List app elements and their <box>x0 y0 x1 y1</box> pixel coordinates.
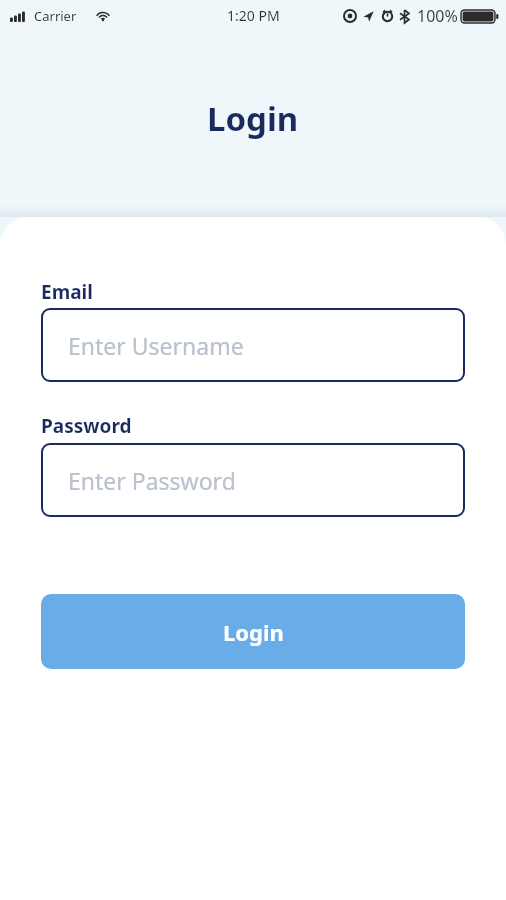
staticText: Enter Username <box>68 330 244 361</box>
staticText: Login <box>207 96 299 141</box>
button[interactable]: Enter Password <box>41 443 465 517</box>
staticText: Login <box>223 617 284 647</box>
staticText: Email <box>41 279 93 305</box>
staticText: Carrier <box>34 7 77 25</box>
staticText: 1:20 PM <box>227 6 280 25</box>
button[interactable]: Enter Username <box>41 308 465 382</box>
staticText: Password <box>41 413 132 439</box>
staticText: Enter Password <box>68 465 236 496</box>
staticText: 100% <box>417 5 458 27</box>
button[interactable]: Login <box>41 594 465 669</box>
